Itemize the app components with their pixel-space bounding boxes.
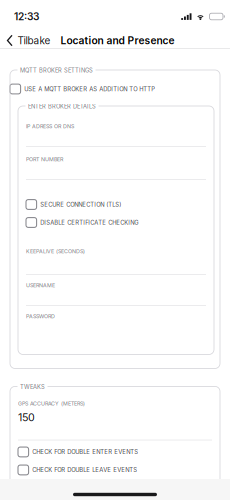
staticText: IP ADRESS OR DNS (26, 123, 74, 129)
button[interactable]: USE A MQTT BROKER AS ADDITION TO HTTP (10, 83, 220, 95)
button[interactable]: CHECK FOR DOUBLE ENTER EVENTS (18, 446, 212, 457)
button[interactable]: SECURE CONNECTION (TLS) (26, 199, 206, 210)
staticText: CHECK FOR DOUBLE LEAVE EVENTS (32, 466, 137, 473)
button[interactable]: PORT NUMBER (26, 147, 206, 180)
staticText: USE A MQTT BROKER AS ADDITION TO HTTP (24, 85, 155, 93)
button[interactable]: IP ADRESS OR DNS (26, 106, 206, 147)
staticText: 150 (18, 411, 35, 424)
staticText: Tilbake (17, 34, 50, 47)
staticText: Location and Presence (60, 34, 174, 47)
staticText: SECURE CONNECTION (TLS) (40, 201, 121, 208)
staticText: USERNAME (26, 282, 55, 288)
button[interactable]: USERNAME (26, 275, 206, 306)
staticText: TWEAKS (20, 383, 45, 390)
staticText: PASSWORD (26, 313, 55, 319)
button[interactable]: CHECK FOR DOUBLE LEAVE EVENTS (18, 464, 212, 475)
staticText: KEEPALIVE (SECONDS) (26, 248, 85, 254)
staticText: ENTER BROKER DETAILS (28, 103, 96, 110)
staticText: CHECK FOR DOUBLE ENTER EVENTS (32, 448, 138, 455)
button[interactable]: Tilbake (0, 33, 54, 48)
staticText: MQTT BROKER SETTINGS (20, 67, 93, 74)
button[interactable]: GPS ACCURACY (METERS) (18, 386, 212, 440)
staticText: 12:33 (14, 10, 39, 23)
button[interactable]: DISABLE CERTIFICATE CHECKING (26, 217, 206, 228)
staticText: PORT NUMBER (26, 156, 63, 162)
staticText: DISABLE CERTIFICATE CHECKING (40, 219, 138, 226)
staticText: GPS ACCURACY (METERS) (18, 400, 85, 407)
button[interactable]: KEEPALIVE (SECONDS) (26, 228, 206, 275)
